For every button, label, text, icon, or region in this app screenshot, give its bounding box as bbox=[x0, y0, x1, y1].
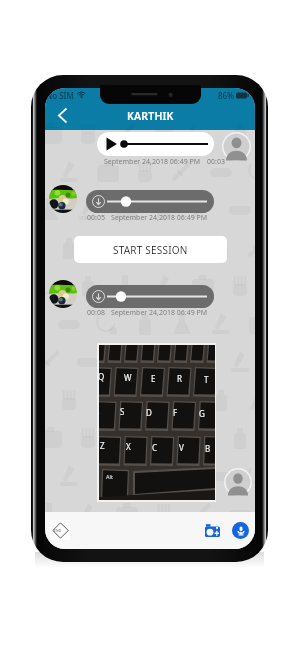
staticText: Q bbox=[99, 371, 105, 382]
button[interactable]: Record voice message bbox=[232, 522, 249, 539]
button[interactable]: START SESSION bbox=[74, 236, 227, 263]
staticText: T bbox=[204, 374, 209, 385]
staticText: 00:03 bbox=[207, 157, 225, 167]
staticText: Alt bbox=[106, 473, 113, 480]
button[interactable]: End session bbox=[50, 520, 70, 540]
staticText: No SIM bbox=[46, 90, 74, 101]
staticText: B bbox=[205, 443, 211, 454]
staticText: September 24,2018 06:49 PM bbox=[111, 308, 208, 318]
staticText: X bbox=[126, 441, 131, 452]
staticText: S bbox=[120, 406, 125, 417]
staticText: 86% bbox=[218, 90, 234, 101]
staticText: September 24,2018 06:49 PM bbox=[104, 157, 201, 167]
button[interactable]: Q bbox=[97, 343, 216, 502]
staticText: END bbox=[54, 528, 62, 533]
staticText: V bbox=[179, 442, 184, 453]
staticText: G bbox=[199, 408, 205, 419]
button[interactable]: Back bbox=[49, 102, 75, 128]
staticText: September 24,2018 06:49 PM bbox=[111, 213, 208, 223]
staticText: Z bbox=[100, 440, 105, 451]
button[interactable] bbox=[86, 285, 214, 308]
staticText: C bbox=[152, 442, 158, 453]
staticText: R bbox=[177, 373, 182, 384]
button[interactable]: Camera bbox=[199, 517, 225, 543]
staticText: D bbox=[146, 407, 152, 418]
button[interactable] bbox=[97, 132, 214, 156]
staticText: E bbox=[151, 373, 156, 384]
staticText: A bbox=[99, 405, 100, 416]
staticText: F bbox=[173, 407, 178, 418]
staticText: W bbox=[124, 372, 132, 383]
staticText: START SESSION bbox=[113, 243, 188, 257]
staticText: 00:08 bbox=[87, 308, 105, 318]
staticText: KARTHIK bbox=[127, 109, 174, 123]
staticText: 00:05 bbox=[87, 213, 105, 223]
button[interactable] bbox=[86, 190, 214, 213]
